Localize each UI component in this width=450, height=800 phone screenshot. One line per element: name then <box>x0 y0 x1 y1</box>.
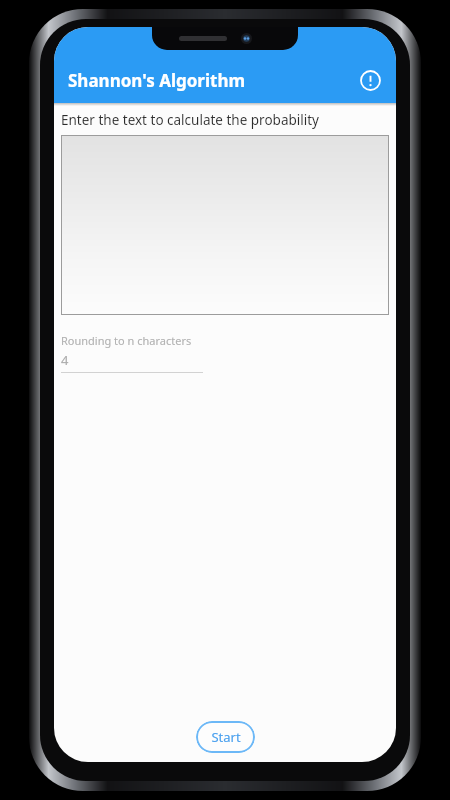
staticText: Start <box>211 728 241 746</box>
staticText: 4 <box>61 351 69 369</box>
button[interactable]: Info <box>352 62 388 98</box>
button[interactable]: Rounding to n characters <box>61 333 203 373</box>
staticText: Shannon's Algorithm <box>68 69 246 92</box>
button[interactable]: Text input <box>61 135 389 315</box>
button[interactable]: Start <box>196 721 255 753</box>
staticText: Enter the text to calculate the probabil… <box>61 111 319 129</box>
staticText: Rounding to n characters <box>61 333 192 348</box>
